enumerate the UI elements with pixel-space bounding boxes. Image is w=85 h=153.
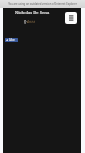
staticText: {}: [24, 20, 27, 24]
staticText: Artist: [27, 19, 35, 24]
staticText: You are using an outdated version of Int…: [0, 2, 85, 6]
staticText: Nicholas De Sena: [15, 10, 50, 16]
button[interactable]: Open navigation menu: [65, 12, 77, 24]
staticText: Like 146: [9, 38, 18, 42]
button[interactable]: Like 146: [5, 38, 18, 42]
